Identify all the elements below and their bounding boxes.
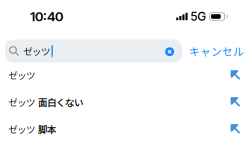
staticText: ゼッツ (8, 68, 35, 82)
staticText: ゼッツ (8, 122, 35, 136)
staticText: キャンセル (189, 43, 244, 59)
staticText: 面白くない (38, 95, 83, 109)
staticText: 10:40 (30, 8, 63, 24)
staticText: ゼッツ (23, 44, 50, 58)
staticText: 脚本 (38, 122, 56, 136)
button[interactable]: Clear text (159, 39, 182, 62)
button[interactable]: ゼッツ (0, 61, 250, 88)
staticText: ゼッツ (8, 95, 35, 109)
button[interactable]: キャンセル (189, 40, 244, 62)
button[interactable]: ゼッツ (0, 115, 250, 142)
button[interactable]: ゼッツ (0, 88, 250, 115)
staticText: 5G (191, 9, 206, 24)
